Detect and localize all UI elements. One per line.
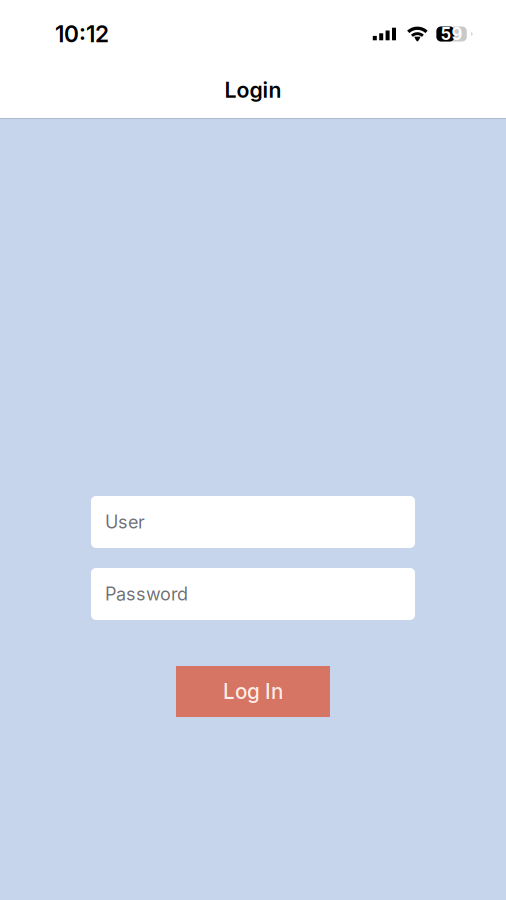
button[interactable]: Password	[91, 568, 415, 620]
staticText: Login	[224, 77, 281, 103]
staticText: Log In	[223, 679, 283, 704]
staticText: 10:12	[55, 20, 109, 48]
button[interactable]: Log In	[176, 666, 330, 717]
staticText: User	[105, 511, 145, 533]
staticText: Password	[105, 583, 188, 605]
button[interactable]: User	[91, 496, 415, 548]
staticText: 59	[441, 24, 463, 44]
